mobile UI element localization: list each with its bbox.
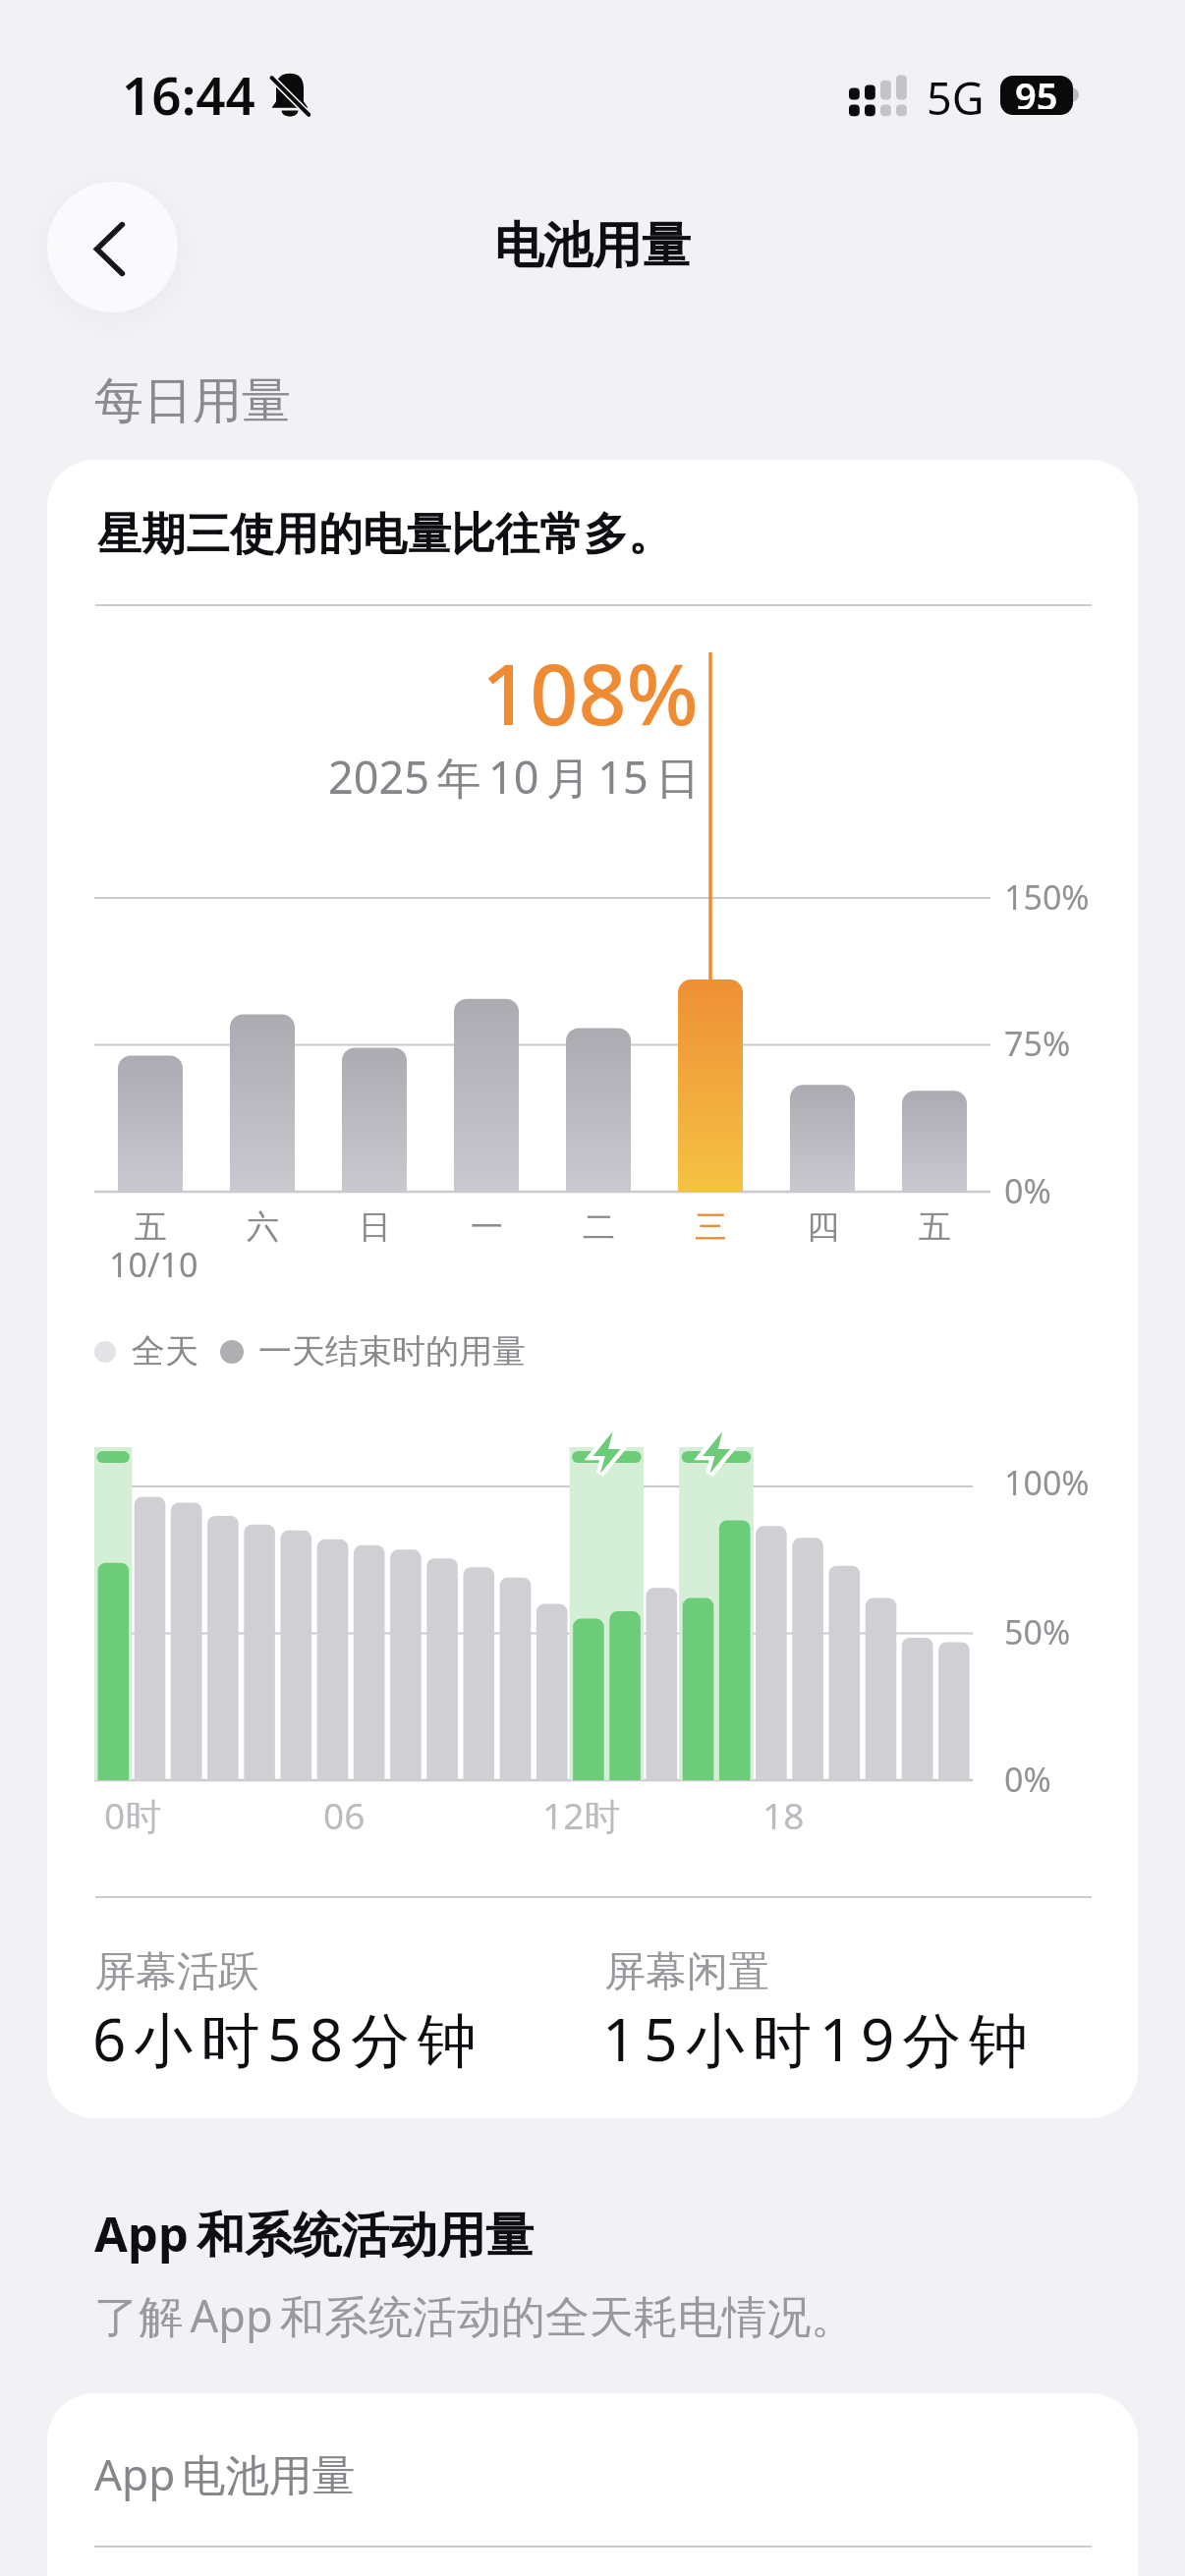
- staticText: 2025 年 10 月 15 日: [328, 747, 701, 807]
- staticText: 150%: [1004, 874, 1090, 920]
- staticText: 每日用量: [94, 370, 291, 432]
- staticText: 屏幕活跃: [94, 1946, 259, 1998]
- staticText: 四: [807, 1206, 839, 1248]
- staticText: 12时: [542, 1790, 621, 1840]
- staticText: 二: [583, 1206, 615, 1248]
- staticText: 50%: [1004, 1609, 1071, 1654]
- staticText: 屏幕闲置: [604, 1946, 769, 1998]
- staticText: 10/10: [109, 1242, 198, 1287]
- staticText: 06: [323, 1790, 366, 1839]
- staticText: 了解 App 和系统活动的全天耗电情况。: [94, 2285, 856, 2345]
- staticText: App 和系统活动用量: [94, 2201, 534, 2267]
- staticText: 五: [135, 1206, 167, 1248]
- staticText: App 电池用量: [94, 2444, 356, 2503]
- staticText: 0%: [1004, 1757, 1051, 1802]
- staticText: 16:44: [122, 59, 255, 130]
- staticText: 日: [359, 1206, 391, 1248]
- staticText: 三: [695, 1206, 727, 1248]
- staticText: 95: [1015, 76, 1058, 109]
- staticText: 15小时19分钟: [602, 1998, 1037, 2079]
- staticText: 75%: [1004, 1021, 1071, 1066]
- staticText: 一: [471, 1206, 503, 1248]
- button[interactable]: App 电池用量: [47, 2393, 1138, 2576]
- button[interactable]: Back: [47, 182, 178, 312]
- staticText: 电池用量: [494, 215, 691, 277]
- staticText: 一天结束时的用量: [258, 1330, 526, 1372]
- staticText: 5G: [927, 68, 985, 128]
- staticText: 0时: [104, 1790, 162, 1840]
- staticText: 全天: [132, 1330, 198, 1372]
- staticText: 六: [247, 1206, 279, 1248]
- staticText: 108%: [481, 635, 699, 750]
- staticText: 0%: [1004, 1168, 1051, 1213]
- staticText: 18: [762, 1790, 805, 1839]
- staticText: 6小时58分钟: [92, 1998, 484, 2079]
- staticText: 100%: [1004, 1460, 1090, 1505]
- staticText: 五: [919, 1206, 951, 1248]
- staticText: 星期三使用的电量比往常多。: [97, 507, 672, 563]
